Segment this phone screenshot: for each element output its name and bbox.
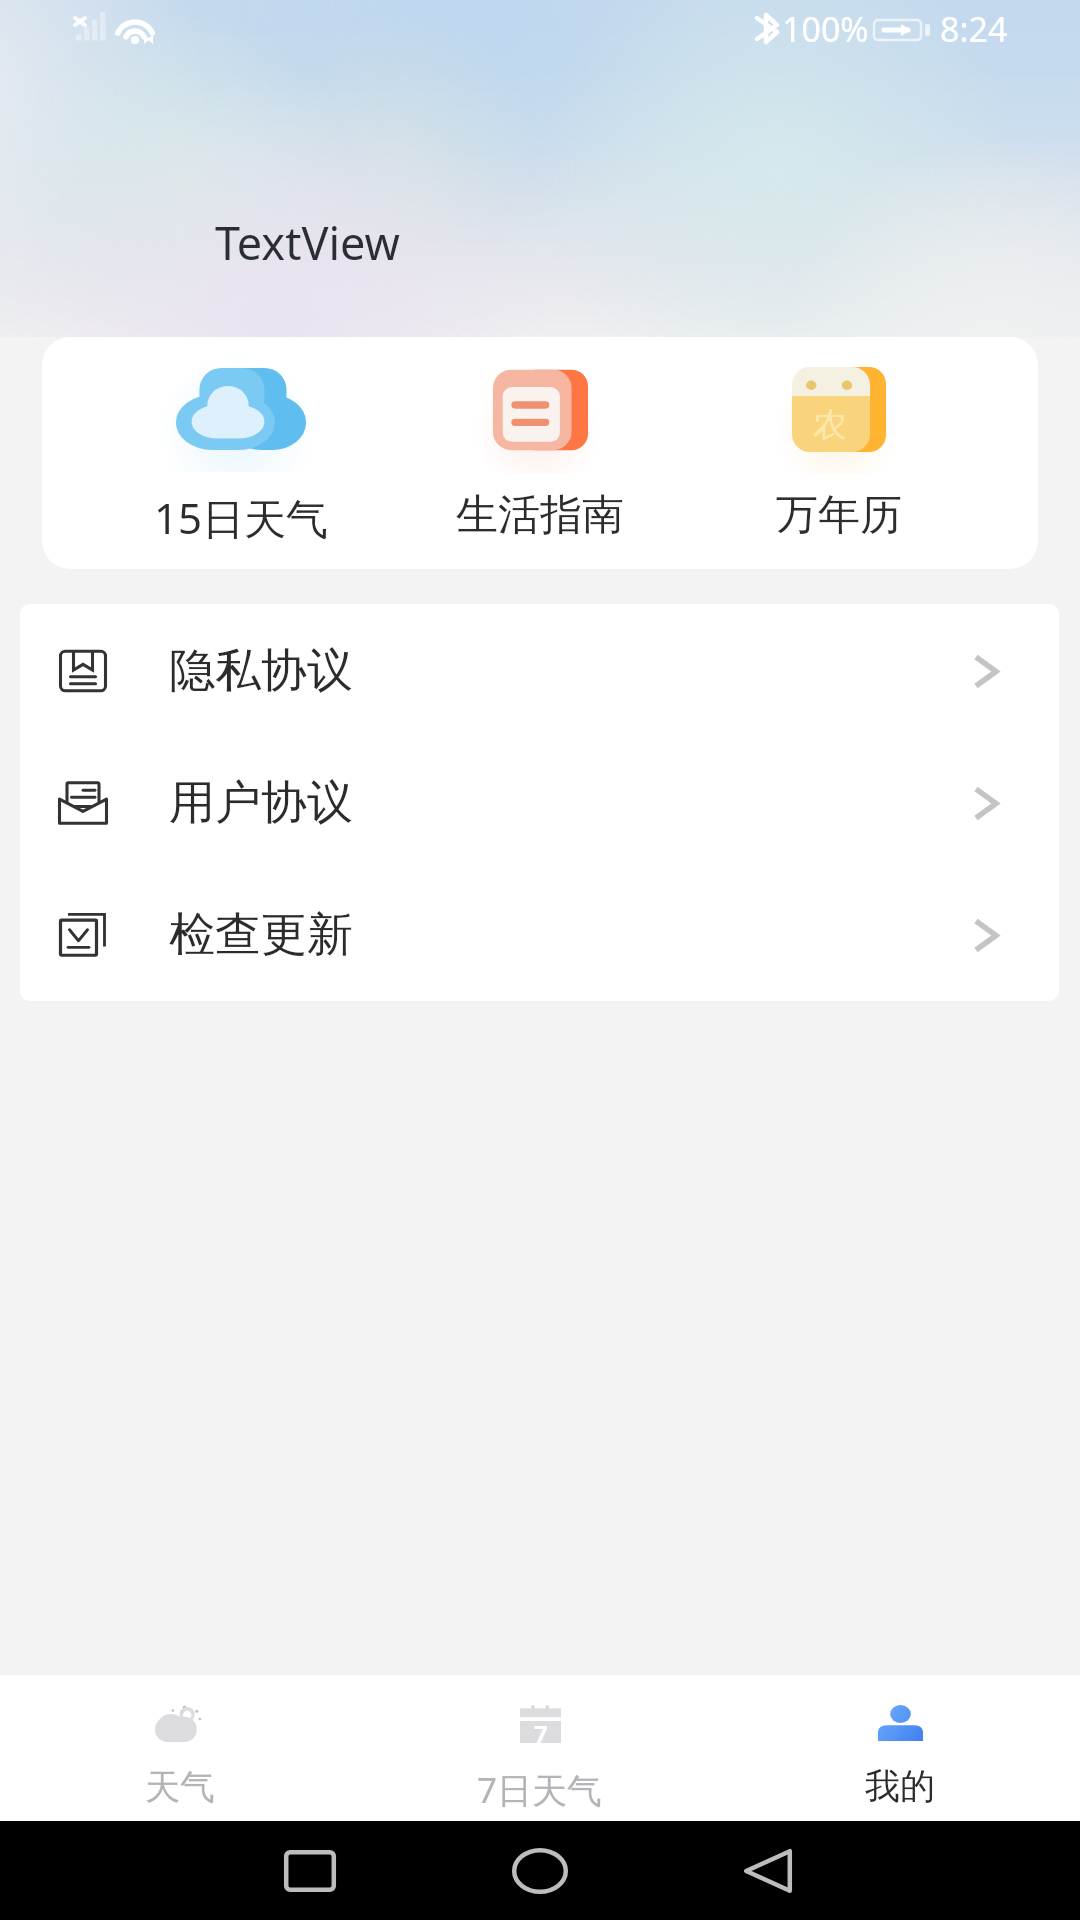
staticText: 农: [813, 403, 847, 446]
staticText: 万年历: [776, 489, 902, 542]
staticText: 用户协议: [169, 774, 353, 832]
staticText: 天气: [145, 1765, 215, 1809]
staticText: 100%: [782, 6, 869, 52]
staticText: 8:24: [940, 6, 1008, 52]
staticText: TextView: [215, 212, 400, 273]
button[interactable]: Home: [460, 1831, 620, 1911]
button[interactable]: 检查更新: [20, 869, 1059, 1001]
staticText: 检查更新: [169, 906, 353, 964]
staticText: 我的: [865, 1764, 935, 1808]
button[interactable]: 农: [739, 337, 939, 542]
button[interactable]: 生活指南: [440, 337, 640, 542]
button[interactable]: 天气: [0, 1675, 360, 1809]
staticText: 隐私协议: [169, 642, 353, 700]
button[interactable]: 隐私协议: [20, 605, 1059, 737]
button[interactable]: 用户协议: [20, 737, 1059, 869]
button[interactable]: 15日天气: [141, 337, 341, 546]
staticText: 7日天气: [477, 1766, 603, 1814]
button[interactable]: 我的: [720, 1675, 1080, 1808]
button[interactable]: Back: [688, 1831, 848, 1911]
staticText: 7: [534, 1717, 548, 1750]
button[interactable]: 7: [360, 1675, 720, 1814]
staticText: 生活指南: [456, 489, 624, 542]
button[interactable]: Recent apps: [230, 1831, 390, 1911]
staticText: 15日天气: [154, 489, 329, 546]
